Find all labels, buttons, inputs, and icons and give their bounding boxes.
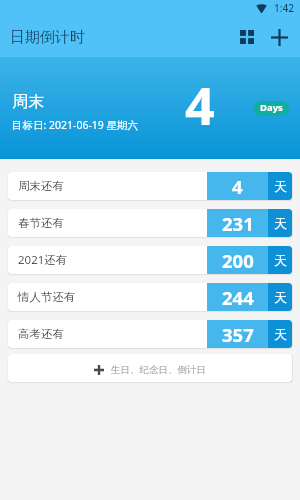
staticText: 目标日: 2021-06-19 星期六 bbox=[12, 118, 139, 132]
staticText: 4 bbox=[232, 174, 243, 199]
staticText: 天 bbox=[274, 326, 287, 342]
staticText: 天 bbox=[274, 215, 287, 231]
staticText: 1:42 bbox=[274, 1, 294, 15]
staticText: 生日、纪念日、倒计日 bbox=[111, 364, 206, 376]
button[interactable]: 周末还有 bbox=[8, 172, 292, 200]
staticText: Days bbox=[260, 101, 283, 114]
staticText: 周末 bbox=[12, 92, 44, 112]
staticText: 日期倒计时 bbox=[10, 28, 85, 47]
staticText: 2021还有 bbox=[18, 252, 68, 268]
staticText: 244 bbox=[222, 285, 254, 310]
staticText: 357 bbox=[222, 322, 254, 347]
staticText: 高考还有 bbox=[18, 327, 64, 341]
staticText: 周末还有 bbox=[18, 179, 64, 193]
button[interactable]: 春节还有 bbox=[8, 209, 292, 237]
staticText: 情人节还有 bbox=[18, 290, 76, 304]
button[interactable]: Add countdown bbox=[263, 21, 295, 53]
button[interactable]: 生日、纪念日、倒计日 bbox=[8, 354, 292, 382]
button[interactable]: 高考还有 bbox=[8, 320, 292, 348]
button[interactable]: 情人节还有 bbox=[8, 283, 292, 311]
staticText: 天 bbox=[274, 289, 287, 305]
button[interactable]: 2021还有 bbox=[8, 246, 292, 274]
staticText: 4 bbox=[185, 69, 215, 129]
staticText: 天 bbox=[274, 252, 287, 268]
button[interactable]: Grid view bbox=[231, 21, 263, 53]
staticText: 200 bbox=[222, 248, 254, 273]
staticText: 天 bbox=[274, 178, 287, 194]
staticText: 231 bbox=[222, 211, 254, 236]
staticText: 春节还有 bbox=[18, 216, 64, 230]
